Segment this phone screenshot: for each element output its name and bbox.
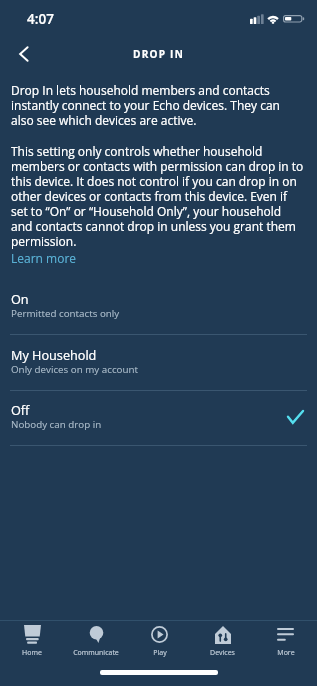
staticText: Play xyxy=(153,648,167,658)
staticText: Communicate xyxy=(73,648,119,658)
staticText: My Household xyxy=(11,346,97,363)
button[interactable]: Devices xyxy=(191,621,254,668)
button[interactable]: Back xyxy=(4,34,44,74)
button[interactable]: Off xyxy=(0,390,317,446)
staticText: This setting only controls whether house… xyxy=(11,143,304,250)
staticText: 4:07 xyxy=(27,10,54,28)
button[interactable]: Play xyxy=(128,621,191,668)
button[interactable]: My Household xyxy=(0,335,317,391)
button[interactable]: Home xyxy=(0,621,64,668)
staticText: On xyxy=(11,290,29,307)
staticText: Learn more xyxy=(11,250,77,266)
staticText: Off xyxy=(11,401,30,418)
button[interactable]: Learn more xyxy=(11,250,77,266)
button[interactable]: On xyxy=(0,279,317,335)
staticText: Drop In lets household members and conta… xyxy=(11,82,304,129)
staticText: Home xyxy=(22,648,42,658)
button[interactable]: More xyxy=(254,621,317,668)
staticText: More xyxy=(277,648,295,658)
staticText: Nobody can drop in xyxy=(11,418,102,431)
staticText: Only devices on my account xyxy=(11,363,139,376)
staticText: DROP IN xyxy=(133,47,185,61)
button[interactable]: Communicate xyxy=(64,621,128,668)
staticText: Devices xyxy=(210,648,235,658)
staticText: Permitted contacts only xyxy=(11,307,120,320)
